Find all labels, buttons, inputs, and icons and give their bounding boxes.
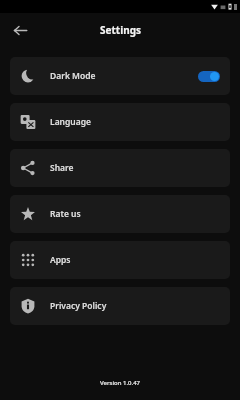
button[interactable]: Dark Mode	[10, 57, 230, 95]
staticText: Privacy Policy	[50, 300, 107, 312]
staticText: Rate us	[50, 208, 81, 220]
button[interactable]: Share	[10, 149, 230, 187]
button[interactable]: Apps	[10, 241, 230, 279]
staticText: Dark Mode	[50, 70, 96, 82]
button[interactable]: Privacy Policy	[10, 287, 230, 325]
button[interactable]: Dark Mode toggle	[198, 71, 220, 82]
staticText: Version 1.0.47	[0, 379, 240, 387]
staticText: Settings	[100, 23, 141, 37]
staticText: Language	[50, 116, 92, 128]
button[interactable]: Back	[7, 17, 33, 43]
button[interactable]: Language	[10, 103, 230, 141]
staticText: Share	[50, 162, 74, 174]
button[interactable]: Rate us	[10, 195, 230, 233]
staticText: Apps	[50, 254, 71, 266]
